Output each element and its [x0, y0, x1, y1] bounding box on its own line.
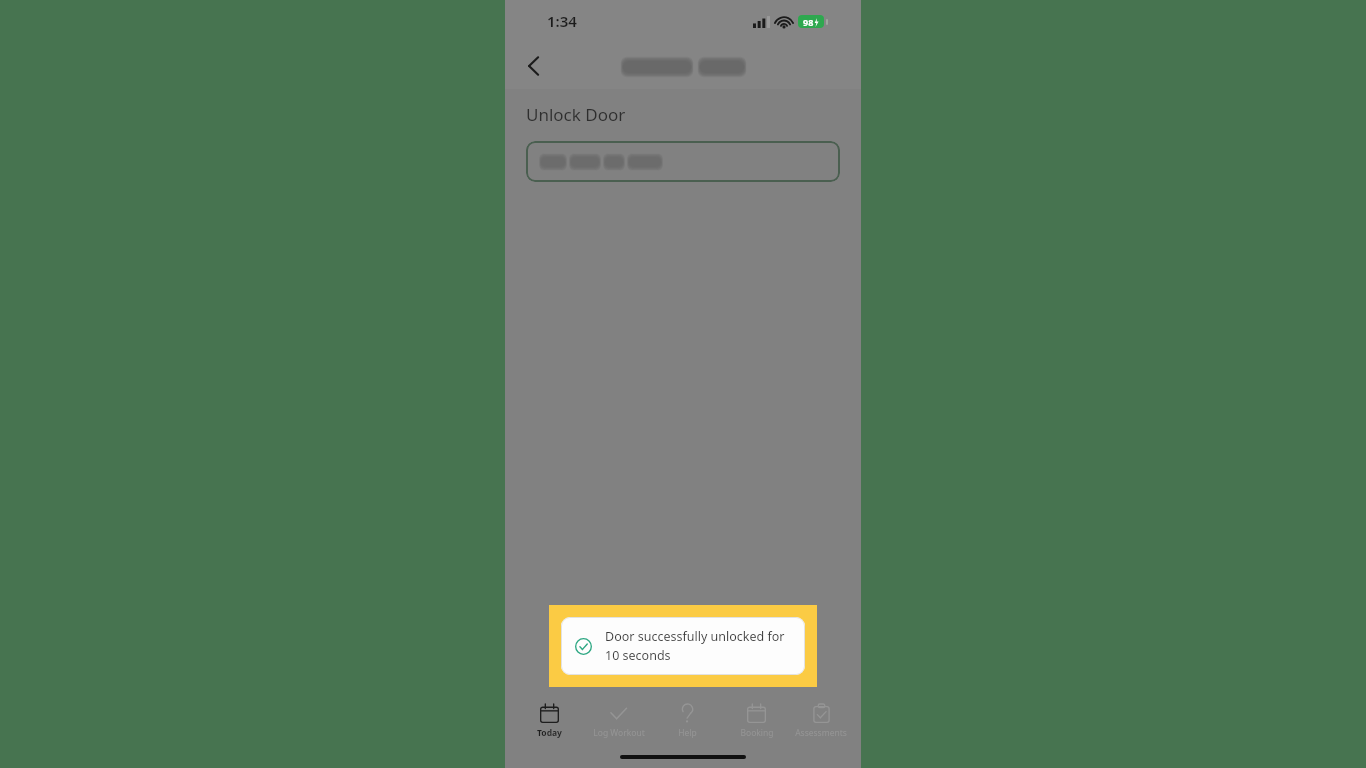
staticText: 1:34 [547, 11, 577, 31]
staticText: Log Workout [593, 727, 645, 739]
button[interactable]: Door successfully unlocked for 10 second… [561, 617, 805, 675]
staticText: Help [678, 727, 697, 739]
staticText: 98 [803, 16, 814, 28]
staticText: Booking [740, 727, 774, 739]
button[interactable]: Booking [722, 700, 791, 746]
button[interactable] [526, 141, 840, 182]
staticText: Assessments [795, 727, 847, 739]
staticText: Today [537, 727, 562, 739]
button[interactable]: Assessments [791, 700, 851, 746]
button[interactable]: Log Workout [584, 700, 653, 746]
button[interactable]: Back [511, 44, 555, 88]
staticText: Door successfully unlocked for 10 second… [605, 628, 793, 664]
staticText: Unlock Door [526, 103, 626, 126]
button[interactable]: Today [515, 700, 584, 746]
